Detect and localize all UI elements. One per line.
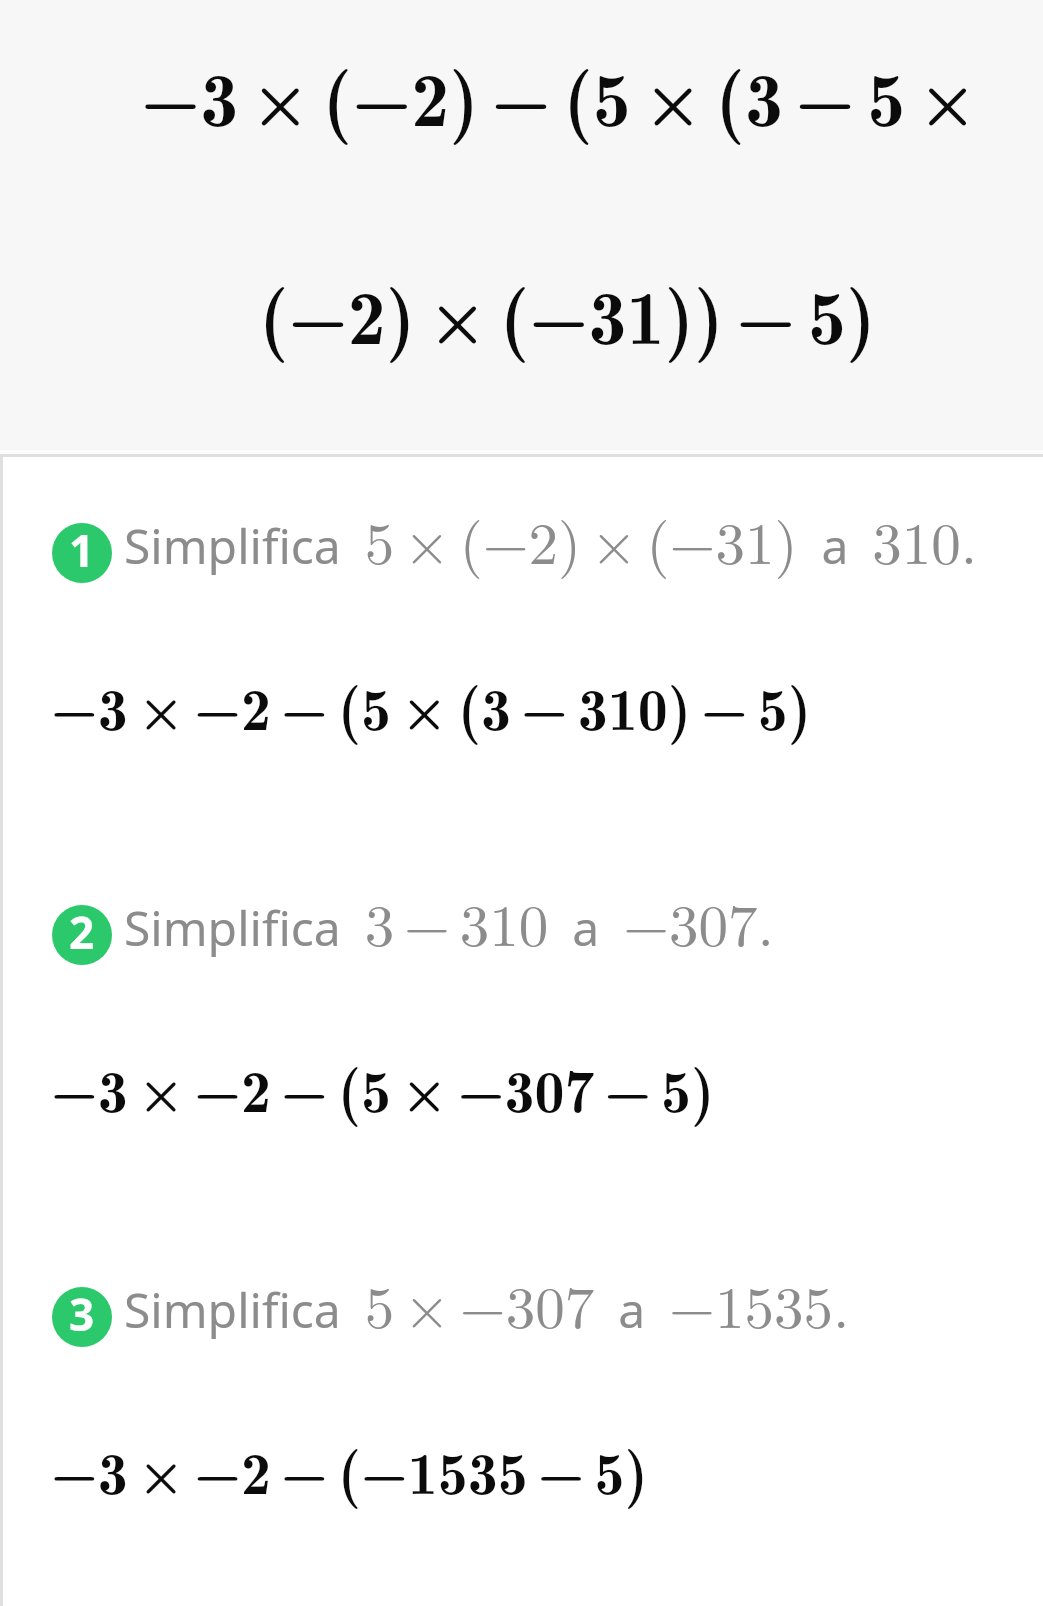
staticText: Simplifica 3 − 310 a −307. (124, 880, 774, 964)
button[interactable]: 2 (0, 884, 1043, 986)
staticText: −3 × −2 − (−1535 − 5) (51, 1426, 648, 1512)
staticText: Simplifica 5 × (−2) × (−31) a 310. (124, 498, 978, 582)
staticText: 2 (69, 905, 95, 962)
staticText: (−2) × (−31)) − 5) (259, 258, 876, 367)
button[interactable]: −3 × −2 − (5 × −307 − 5) (0, 1023, 1043, 1151)
staticText: 1 (69, 523, 95, 580)
staticText: 3 (69, 1287, 95, 1344)
staticText: −3 × −2 − (5 × (3 − 310) − 5) (51, 662, 812, 748)
staticText: Simplifica 5 × −307 a −1535. (124, 1262, 850, 1346)
button[interactable]: 3 (0, 1266, 1043, 1368)
staticText: −3 × (−2) − (5 × (3 − 5 × (141, 40, 990, 149)
button[interactable]: −3 × −2 − (−1535 − 5) (0, 1405, 1043, 1533)
button[interactable]: −3 × −2 − (5 × (3 − 310) − 5) (0, 641, 1043, 769)
staticText: −3 × −2 − (5 × −307 − 5) (51, 1044, 715, 1130)
button[interactable]: −3 × (−2) − (5 × (3 − 5 × (0, 0, 1043, 450)
button[interactable]: 1 (0, 502, 1043, 604)
